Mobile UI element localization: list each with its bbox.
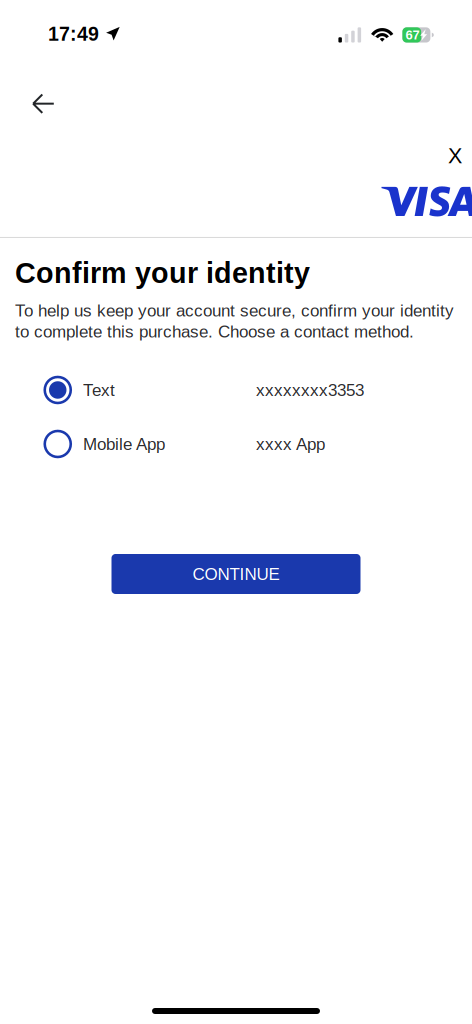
button[interactable]: Back [0, 82, 69, 126]
staticText: To help us keep your account secure, con… [15, 301, 454, 320]
staticText: xxxxxxxx3353 [256, 380, 364, 399]
button[interactable]: CONTINUE [111, 554, 360, 594]
staticText: X [448, 144, 462, 168]
staticText: to complete this purchase. Choose a cont… [15, 322, 414, 341]
button[interactable]: Mobile App [0, 417, 472, 471]
staticText: Text [83, 380, 115, 399]
staticText: Confirm your identity [15, 257, 310, 289]
staticText: CONTINUE [192, 564, 279, 583]
staticText: xxxx App [256, 434, 325, 453]
staticText: 17:49 [48, 23, 99, 45]
button[interactable]: Text [0, 363, 472, 417]
staticText: Mobile App [83, 434, 165, 453]
button[interactable]: Close [439, 142, 471, 170]
staticText: 67 [405, 28, 419, 42]
